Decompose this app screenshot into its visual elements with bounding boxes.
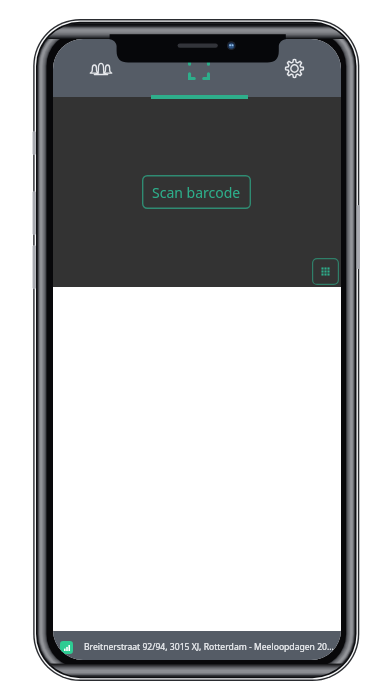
staticText: Scan barcode bbox=[152, 183, 241, 202]
button[interactable]: Scan barcode bbox=[142, 175, 251, 209]
button[interactable]: Contacts bbox=[70, 45, 132, 92]
button[interactable]: Settings bbox=[263, 45, 325, 92]
staticText: Breitnerstraat 92/94, 3015 XJ, Rotterdam… bbox=[84, 641, 334, 653]
button[interactable]: Keypad bbox=[312, 258, 339, 285]
button[interactable]: Breitnerstraat 92/94, 3015 XJ, Rotterdam… bbox=[53, 631, 341, 660]
button[interactable]: Scan barcode bbox=[168, 45, 230, 92]
